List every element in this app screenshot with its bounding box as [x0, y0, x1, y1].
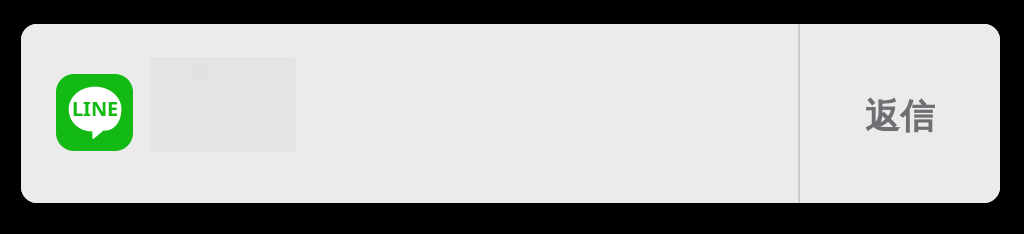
button[interactable]: LINE message notification: [21, 24, 798, 203]
staticText: LINE: [72, 95, 118, 122]
staticText: 返信: [865, 95, 935, 138]
button[interactable]: 返信: [800, 24, 1000, 203]
